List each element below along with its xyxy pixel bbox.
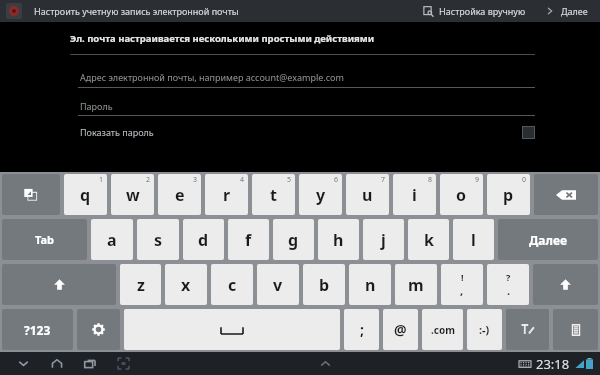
- staticText: 2: [146, 175, 151, 185]
- staticText: Эл. почта настраивается несколькими прос…: [70, 32, 375, 45]
- staticText: z: [137, 274, 145, 296]
- staticText: ?: [506, 271, 511, 283]
- button[interactable]: Screenshot: [110, 352, 136, 375]
- staticText: p: [503, 184, 514, 206]
- staticText: 6: [334, 175, 339, 185]
- button[interactable]: :-): [467, 309, 502, 350]
- button[interactable]: Home: [44, 352, 70, 375]
- button[interactable]: d: [183, 219, 224, 260]
- button[interactable]: Далее: [539, 0, 594, 22]
- staticText: Далее: [529, 232, 567, 248]
- button[interactable]: x: [165, 264, 207, 305]
- button[interactable]: Пароль: [70, 97, 535, 115]
- button[interactable]: a: [91, 219, 133, 260]
- button[interactable]: Backspace: [534, 174, 598, 215]
- button[interactable]: l: [453, 219, 494, 260]
- staticText: a: [107, 229, 117, 251]
- button[interactable]: w: [111, 174, 154, 215]
- button[interactable]: k: [408, 219, 449, 260]
- staticText: Настроить учетную запись электронной поч…: [34, 5, 239, 17]
- staticText: w: [126, 184, 140, 206]
- button[interactable]: t: [252, 174, 295, 215]
- staticText: i: [412, 184, 417, 206]
- staticText: Адрес электронной почты, например accoun…: [80, 71, 344, 83]
- button[interactable]: y: [299, 174, 342, 215]
- button[interactable]: s: [137, 219, 179, 260]
- button[interactable]: Input settings: [77, 309, 120, 350]
- button[interactable]: r: [205, 174, 248, 215]
- staticText: Пароль: [80, 100, 113, 112]
- button[interactable]: !: [441, 264, 483, 305]
- staticText: d: [198, 229, 209, 251]
- button[interactable]: 23:18: [515, 352, 600, 375]
- staticText: k: [424, 229, 434, 251]
- staticText: .: [507, 283, 511, 298]
- staticText: v: [273, 274, 283, 296]
- staticText: @: [394, 320, 407, 339]
- button[interactable]: Далее: [498, 219, 598, 260]
- staticText: g: [288, 229, 299, 251]
- button[interactable]: b: [303, 264, 345, 305]
- button[interactable]: Expand: [312, 352, 338, 375]
- button[interactable]: Показать пароль: [70, 121, 535, 143]
- button[interactable]: z: [120, 264, 161, 305]
- staticText: l: [471, 229, 476, 251]
- button[interactable]: .com: [422, 309, 463, 350]
- staticText: t: [270, 184, 277, 206]
- staticText: 8: [428, 175, 433, 185]
- button[interactable]: j: [363, 219, 404, 260]
- button[interactable]: c: [211, 264, 253, 305]
- staticText: Настройка вручную: [439, 5, 526, 17]
- staticText: ?123: [24, 322, 51, 338]
- button[interactable]: ;: [344, 309, 379, 350]
- staticText: 23:18: [536, 355, 570, 373]
- staticText: 9: [475, 175, 480, 185]
- button[interactable]: Handwriting: [506, 309, 549, 350]
- staticText: c: [228, 274, 237, 296]
- staticText: :-): [479, 322, 490, 337]
- button[interactable]: f: [228, 219, 269, 260]
- button[interactable]: Clipboard: [553, 309, 598, 350]
- button[interactable]: Tab: [2, 219, 87, 260]
- staticText: j: [381, 229, 386, 251]
- staticText: h: [333, 229, 344, 251]
- button[interactable]: g: [273, 219, 314, 260]
- staticText: ;: [360, 320, 364, 339]
- button[interactable]: p: [487, 174, 530, 215]
- button[interactable]: Shift: [533, 264, 598, 305]
- button[interactable]: Shift: [2, 264, 116, 305]
- button[interactable]: [124, 309, 340, 350]
- button[interactable]: u: [346, 174, 389, 215]
- button[interactable]: m: [395, 264, 437, 305]
- staticText: r: [223, 184, 231, 206]
- staticText: n: [365, 274, 376, 296]
- staticText: 7: [381, 175, 386, 185]
- button[interactable]: o: [440, 174, 483, 215]
- button[interactable]: ?: [487, 264, 529, 305]
- button[interactable]: n: [349, 264, 391, 305]
- button[interactable]: Настройка вручную: [418, 0, 531, 22]
- button[interactable]: Back: [10, 352, 36, 375]
- staticText: ,: [460, 283, 464, 298]
- button[interactable]: h: [318, 219, 359, 260]
- button[interactable]: Адрес электронной почты, например accoun…: [70, 67, 535, 87]
- button[interactable]: @: [383, 309, 418, 350]
- button[interactable]: ?123: [2, 309, 73, 350]
- button[interactable]: App icon: [6, 3, 22, 19]
- staticText: 3: [193, 175, 198, 185]
- staticText: 0: [522, 175, 527, 185]
- button[interactable]: Recents: [77, 352, 103, 375]
- staticText: y: [316, 184, 326, 206]
- staticText: u: [362, 184, 373, 206]
- staticText: 1: [99, 175, 104, 185]
- button[interactable]: i: [393, 174, 436, 215]
- button[interactable]: e: [158, 174, 201, 215]
- button[interactable]: Hide keyboard: [2, 174, 60, 215]
- staticText: o: [456, 184, 467, 206]
- button[interactable]: v: [257, 264, 299, 305]
- staticText: Tab: [35, 232, 55, 247]
- button[interactable]: q: [64, 174, 107, 215]
- staticText: x: [181, 274, 191, 296]
- staticText: .com: [431, 323, 455, 337]
- staticText: Показать пароль: [80, 126, 154, 138]
